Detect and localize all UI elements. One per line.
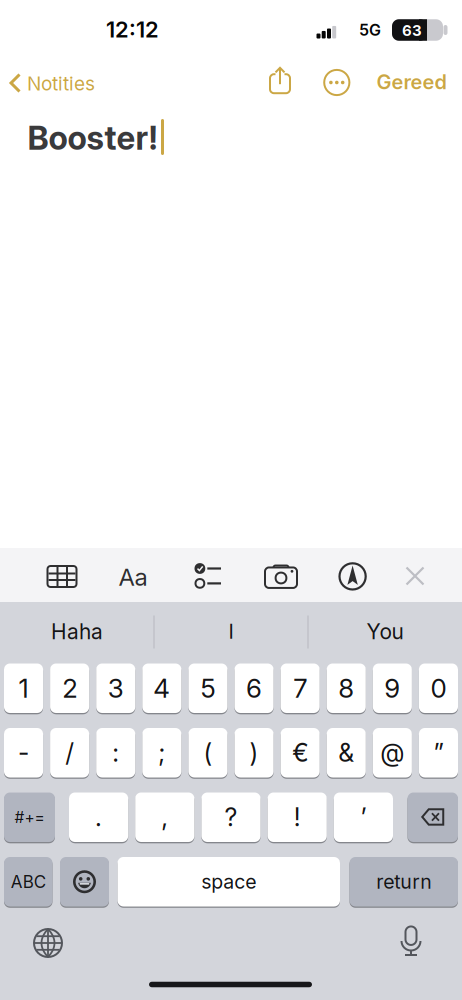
button[interactable]: ! — [268, 791, 327, 843]
button[interactable] — [407, 791, 458, 843]
staticText: - — [18, 738, 29, 768]
staticText: 4 — [153, 672, 170, 704]
staticText: Booster! — [27, 118, 157, 158]
staticText: 12:12 — [106, 16, 159, 43]
button[interactable]: Haha — [2, 603, 152, 659]
staticText: 7 — [293, 672, 307, 704]
button[interactable] — [60, 856, 109, 907]
button[interactable] — [45, 561, 79, 591]
button[interactable]: 1 — [4, 662, 43, 714]
button[interactable]: ; — [142, 727, 181, 778]
button[interactable]: & — [327, 727, 366, 778]
staticText: ? — [224, 802, 237, 832]
button[interactable]: 6 — [234, 662, 274, 714]
staticText: #+= — [14, 808, 44, 827]
staticText: 9 — [384, 672, 400, 704]
button[interactable]: 7 — [281, 662, 320, 714]
button[interactable]: / — [50, 727, 89, 778]
button[interactable] — [194, 563, 224, 589]
button[interactable]: . — [69, 791, 128, 843]
button[interactable]: 4 — [142, 662, 181, 714]
button[interactable]: return — [349, 856, 458, 907]
staticText: ’ — [360, 802, 366, 832]
button[interactable] — [399, 925, 423, 956]
button[interactable]: You — [310, 603, 460, 659]
staticText: return — [376, 870, 431, 894]
button[interactable]: 8 — [327, 662, 366, 714]
button[interactable]: ABC — [4, 856, 52, 907]
staticText: 6 — [246, 672, 262, 704]
staticText: I — [228, 619, 233, 644]
staticText: € — [292, 738, 308, 768]
button[interactable]: @ — [373, 727, 412, 778]
button[interactable]: ” — [419, 727, 458, 778]
staticText: You — [366, 619, 403, 644]
button[interactable] — [323, 68, 351, 96]
button[interactable]: 5 — [188, 662, 227, 714]
staticText: Aa — [118, 562, 147, 591]
staticText: 5G — [359, 20, 381, 40]
button[interactable] — [269, 67, 291, 94]
staticText: : — [112, 738, 119, 768]
button[interactable]: , — [135, 791, 194, 843]
staticText: ” — [433, 738, 443, 768]
button[interactable]: Notities — [8, 70, 112, 96]
button[interactable]: € — [281, 727, 320, 778]
staticText: 1 — [19, 672, 29, 704]
button[interactable]: Aa — [111, 560, 155, 594]
staticText: Notities — [27, 72, 95, 95]
staticText: . — [95, 802, 102, 832]
button[interactable] — [405, 566, 424, 585]
staticText: 5 — [200, 672, 215, 704]
staticText: @ — [380, 738, 404, 768]
staticText: 8 — [338, 672, 354, 704]
staticText: ( — [203, 738, 212, 768]
button[interactable]: ’ — [334, 791, 393, 843]
staticText: ; — [158, 738, 165, 768]
staticText: ! — [294, 802, 301, 832]
button[interactable]: 2 — [50, 662, 89, 714]
button[interactable]: ) — [234, 727, 274, 778]
button[interactable]: #+= — [4, 791, 55, 843]
button[interactable] — [26, 921, 70, 965]
button[interactable] — [264, 564, 297, 588]
staticText: 63 — [402, 21, 422, 39]
button[interactable]: Gereed — [361, 69, 461, 95]
button[interactable]: space — [117, 856, 340, 907]
button[interactable]: ? — [201, 791, 261, 843]
button[interactable]: : — [96, 727, 135, 778]
staticText: Haha — [51, 619, 103, 644]
staticText: ABC — [11, 871, 46, 892]
staticText: 0 — [430, 672, 446, 704]
button[interactable]: I — [156, 603, 306, 659]
staticText: space — [201, 870, 256, 894]
button[interactable]: 3 — [96, 662, 135, 714]
staticText: / — [65, 738, 74, 768]
button[interactable]: 9 — [373, 662, 412, 714]
staticText: ) — [250, 738, 259, 768]
button[interactable]: 0 — [419, 662, 458, 714]
staticText: Gereed — [376, 70, 446, 94]
staticText: & — [338, 738, 354, 768]
button[interactable]: ( — [188, 727, 227, 778]
staticText: , — [161, 802, 168, 832]
staticText: 2 — [62, 672, 77, 704]
button[interactable] — [338, 562, 367, 591]
staticText: 3 — [108, 672, 124, 704]
button[interactable]: - — [4, 727, 43, 778]
